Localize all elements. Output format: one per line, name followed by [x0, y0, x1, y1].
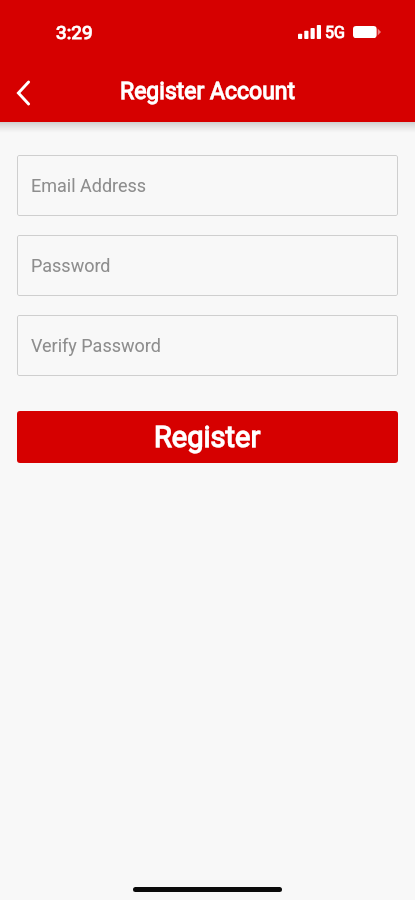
staticText: Register — [154, 420, 261, 454]
button[interactable]: Password — [17, 235, 398, 296]
other: Cellular signal — [298, 25, 321, 39]
button[interactable]: Email Address — [17, 155, 398, 216]
staticText: Email Address — [31, 175, 147, 196]
staticText: 3:29 — [56, 21, 93, 43]
staticText: Register Account — [120, 78, 296, 105]
button[interactable]: Verify Password — [17, 315, 398, 376]
button[interactable]: Register — [17, 411, 398, 463]
staticText: Verify Password — [31, 335, 161, 356]
button[interactable]: Back — [0, 68, 48, 116]
other: Battery full — [353, 26, 381, 38]
staticText: Password — [31, 255, 111, 276]
staticText: 5G — [325, 23, 345, 42]
